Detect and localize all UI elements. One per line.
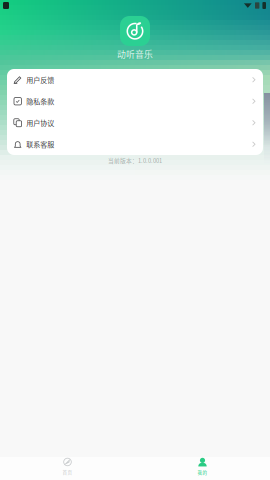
- staticText: 用户协议: [26, 118, 54, 128]
- button[interactable]: 用户反馈: [7, 69, 263, 90]
- button[interactable]: 首页: [0, 457, 135, 480]
- staticText: 首页: [62, 469, 72, 475]
- staticText: 用户反馈: [26, 75, 54, 85]
- button[interactable]: 联系客服: [7, 133, 263, 155]
- button[interactable]: 我的: [135, 457, 270, 480]
- staticText: 当前版本：1.0.0.001: [108, 156, 162, 165]
- button[interactable]: 用户协议: [7, 112, 263, 133]
- staticText: 联系客服: [26, 139, 54, 149]
- button[interactable]: 隐私条款: [7, 90, 263, 112]
- staticText: 动听音乐: [117, 48, 153, 60]
- staticText: 我的: [197, 469, 207, 476]
- staticText: 隐私条款: [26, 96, 54, 106]
